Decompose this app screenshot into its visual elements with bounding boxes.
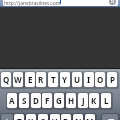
staticText: F (45, 95, 50, 106)
staticText: C (40, 116, 46, 120)
button[interactable]: Clear (109, 0, 116, 5)
button[interactable]: L (101, 93, 111, 108)
staticText: K (91, 95, 97, 106)
staticText: J (82, 95, 85, 106)
staticText: R (38, 74, 44, 85)
staticText: W (14, 74, 22, 85)
button[interactable]: Y (60, 72, 70, 87)
staticText: Y (62, 74, 68, 85)
staticText: L (104, 95, 109, 106)
staticText: U (74, 74, 81, 85)
button[interactable]: V (50, 114, 60, 120)
staticText: Z (17, 116, 22, 120)
button[interactable]: F (42, 93, 52, 108)
button[interactable]: Z (14, 114, 24, 120)
button[interactable]: C (38, 114, 48, 120)
staticText: Q (3, 74, 10, 85)
button[interactable]: D (31, 93, 41, 108)
staticText: M (86, 116, 94, 120)
button[interactable]: Backspace (102, 114, 118, 120)
button[interactable]: U (72, 72, 82, 87)
button[interactable]: O (95, 72, 105, 87)
staticText: O (97, 74, 104, 85)
button[interactable]: X (26, 114, 36, 120)
button[interactable]: W (13, 72, 23, 87)
staticText: N (75, 116, 82, 120)
button[interactable]: A (7, 93, 17, 108)
staticText: B (63, 116, 69, 120)
button[interactable]: T (48, 72, 58, 87)
button[interactable]: I (84, 72, 94, 87)
staticText: X (28, 116, 34, 120)
button[interactable]: http://jansbrasilnet.com (3, 0, 118, 6)
button[interactable]: N (73, 114, 83, 120)
button[interactable]: S (19, 93, 29, 108)
staticText: T (51, 74, 56, 85)
button[interactable]: Shift (1, 114, 13, 120)
staticText: http://jansbrasilnet.com (4, 0, 61, 6)
staticText: H (68, 95, 75, 106)
staticText: E (28, 74, 33, 85)
button[interactable]: M (85, 114, 95, 120)
button[interactable]: H (66, 93, 76, 108)
button[interactable]: E (25, 72, 35, 87)
button[interactable]: K (89, 93, 99, 108)
button[interactable]: G (54, 93, 64, 108)
staticText: V (52, 116, 58, 120)
staticText: D (33, 95, 39, 106)
staticText: I (87, 74, 91, 85)
staticText: P (110, 74, 115, 85)
staticText: G (56, 95, 62, 106)
button[interactable]: R (36, 72, 46, 87)
staticText: S (22, 95, 27, 106)
staticText: A (9, 95, 15, 106)
button[interactable]: J (78, 93, 88, 108)
button[interactable]: P (107, 72, 117, 87)
button[interactable]: B (61, 114, 71, 120)
button[interactable]: Q (1, 72, 11, 87)
